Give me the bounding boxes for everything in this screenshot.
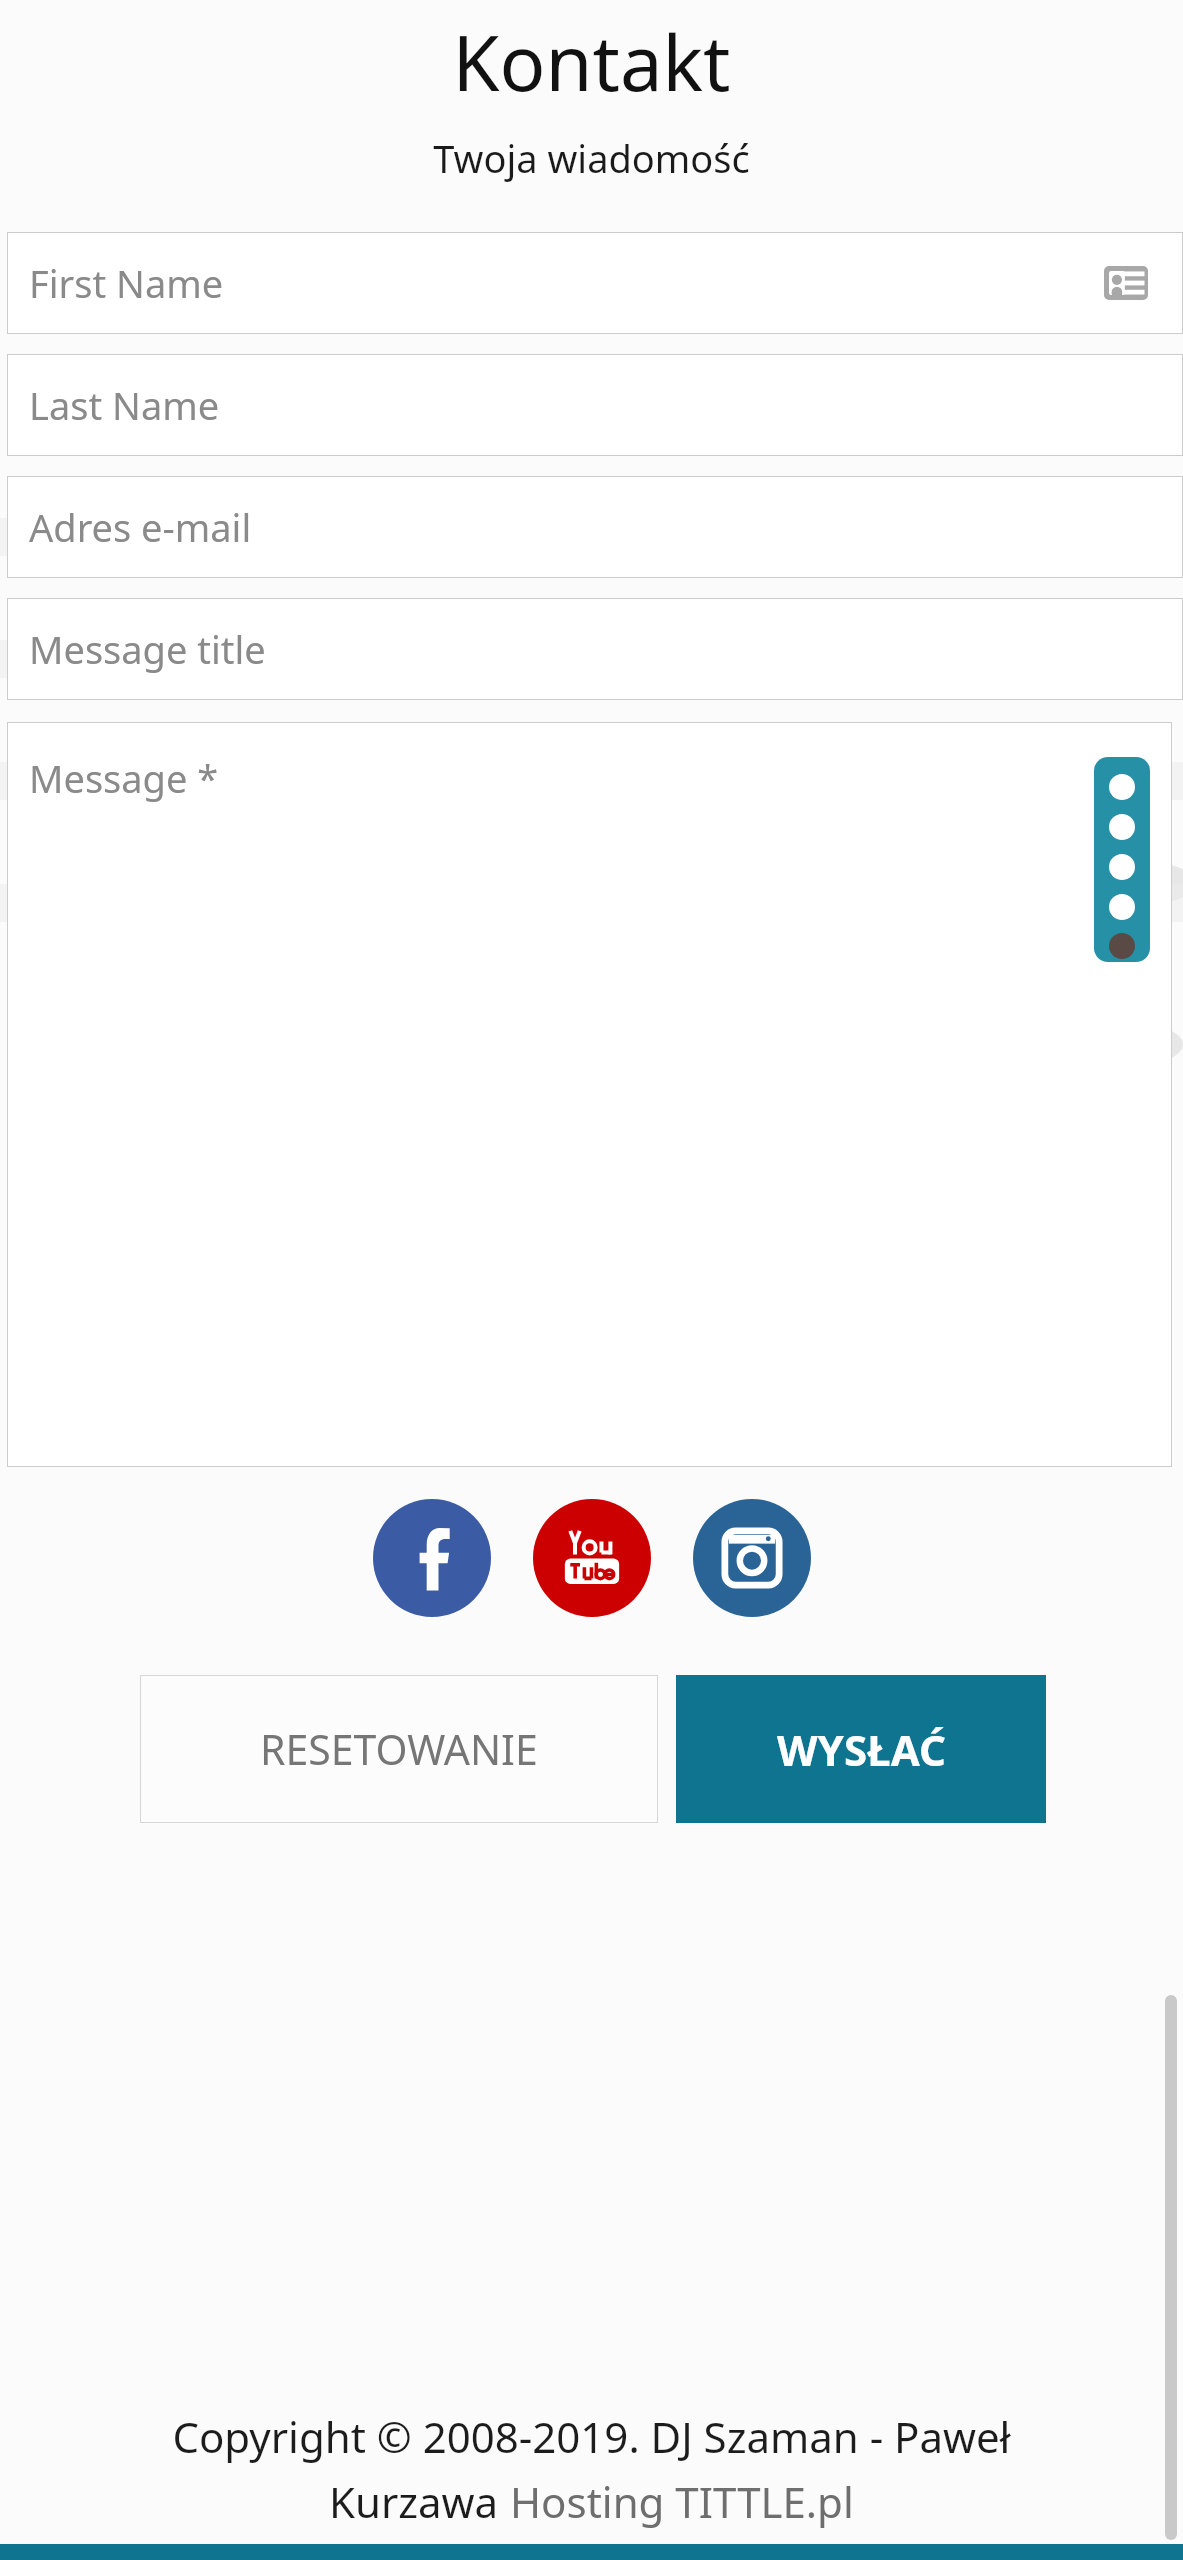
button[interactable]: Last Name [7,354,1183,456]
staticText: Kontakt [0,10,1183,114]
button[interactable]: Emoji picker [1094,757,1150,962]
staticText: Last Name [29,379,220,431]
button[interactable]: Instagram [693,1499,811,1617]
staticText: RESETOWANIE [260,1721,538,1777]
staticText: WYSŁAĆ [777,1721,946,1778]
button[interactable]: Choose contact [1103,260,1149,306]
button[interactable]: Adres e-mail [7,476,1183,578]
button[interactable]: WYSŁAĆ [676,1675,1046,1823]
staticText: Kurzawa [329,2473,510,2530]
button[interactable]: Hosting TITTLE.pl [510,2473,854,2530]
button[interactable]: Message title [7,598,1183,700]
staticText: Message * [29,752,219,804]
staticText: Copyright © 2008-2019. DJ Szaman - Paweł [172,2408,1011,2465]
staticText: Adres e-mail [29,501,252,553]
staticText: Twoja wiadomość [0,132,1183,184]
button[interactable]: First Name [7,232,1183,334]
button[interactable]: Facebook [373,1499,491,1617]
staticText: First Name [29,257,224,309]
button[interactable]: Message * [7,722,1172,1467]
button[interactable]: RESETOWANIE [140,1675,658,1823]
staticText: Message title [29,623,266,675]
button[interactable]: YouTube [533,1499,651,1617]
